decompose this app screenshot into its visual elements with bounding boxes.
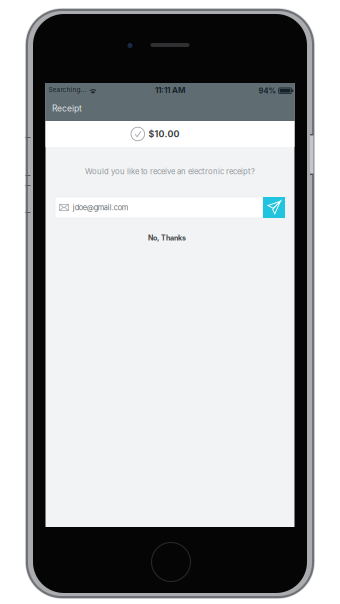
button[interactable]: Send receipt: [263, 197, 285, 218]
staticText: Searching...: [48, 86, 86, 94]
button[interactable]: No, Thanks: [45, 231, 288, 245]
staticText: Receipt: [52, 103, 82, 113]
staticText: 11:11 AM: [155, 85, 185, 95]
staticText: 94%: [258, 86, 276, 95]
staticText: Would you like to receive an electronic …: [85, 167, 255, 176]
staticText: jdoe@gmail.com: [73, 203, 128, 212]
staticText: No, Thanks: [148, 234, 186, 242]
staticText: $10.00: [148, 129, 179, 139]
